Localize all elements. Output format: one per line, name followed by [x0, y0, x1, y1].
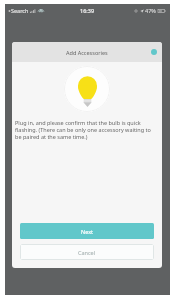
- button[interactable]: Info: [148, 46, 160, 58]
- button[interactable]: Cancel: [20, 244, 154, 260]
- button[interactable]: Next: [20, 223, 154, 239]
- staticText: 16:39: [80, 7, 95, 14]
- staticText: Add Accessories: [66, 49, 108, 56]
- staticText: Cancel: [78, 249, 96, 256]
- staticText: Search: [11, 7, 29, 14]
- staticText: Plug in, and please confirm that the bul…: [15, 119, 154, 140]
- staticText: Next: [81, 228, 94, 235]
- staticText: 47%: [145, 7, 156, 14]
